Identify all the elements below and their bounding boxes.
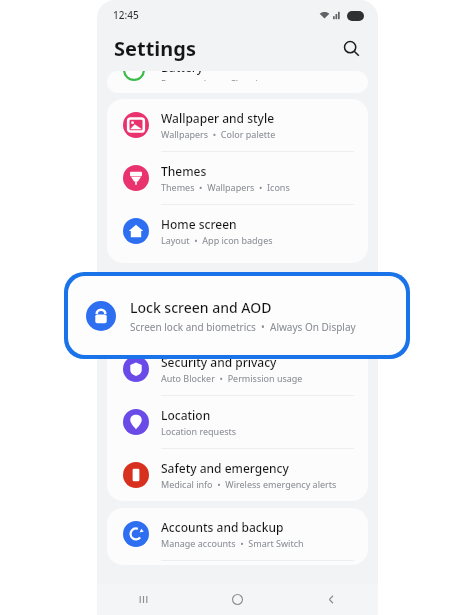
staticText: 12:45 bbox=[113, 8, 139, 22]
button[interactable]: Security and privacy bbox=[107, 343, 368, 395]
staticText: Medical info • Wireless emergency alerts bbox=[161, 478, 337, 490]
staticText: Accounts and backup bbox=[161, 519, 284, 535]
button[interactable]: Back bbox=[284, 584, 378, 615]
staticText: Settings bbox=[114, 35, 196, 62]
staticText: Home screen bbox=[161, 216, 237, 232]
staticText: Layout • App icon badges bbox=[161, 234, 273, 246]
button[interactable]: Recents bbox=[97, 584, 190, 615]
staticText: Location bbox=[161, 407, 211, 423]
staticText: Auto Blocker • Permission usage bbox=[161, 372, 303, 384]
staticText: Themes bbox=[161, 163, 207, 179]
button[interactable]: Location bbox=[107, 396, 368, 448]
staticText: Location requests bbox=[161, 425, 237, 437]
button[interactable]: Safety and emergency bbox=[107, 449, 368, 501]
staticText: Wallpaper and style bbox=[161, 110, 275, 126]
staticText: Power saving • Charging bbox=[161, 77, 269, 81]
staticText: Wallpapers • Color palette bbox=[161, 128, 276, 140]
staticText: Screen lock and biometrics • Always On D… bbox=[130, 320, 356, 334]
staticText: Lock screen and AOD bbox=[130, 298, 272, 317]
button[interactable]: Home bbox=[190, 584, 284, 615]
button[interactable]: Wallpaper and style bbox=[107, 99, 368, 151]
button[interactable]: Battery bbox=[107, 71, 368, 93]
staticText: Safety and emergency bbox=[161, 460, 289, 476]
button[interactable]: Search bbox=[338, 35, 364, 61]
staticText: Themes • Wallpapers • Icons bbox=[161, 181, 290, 193]
button[interactable]: Accounts and backup bbox=[107, 508, 368, 560]
button[interactable]: Themes bbox=[107, 152, 368, 204]
button[interactable]: Lock screen and AOD bbox=[68, 276, 406, 355]
button[interactable]: Home screen bbox=[107, 205, 368, 257]
staticText: Security and privacy bbox=[161, 354, 277, 370]
staticText: Battery bbox=[161, 71, 204, 75]
staticText: Manage accounts • Smart Switch bbox=[161, 537, 304, 549]
